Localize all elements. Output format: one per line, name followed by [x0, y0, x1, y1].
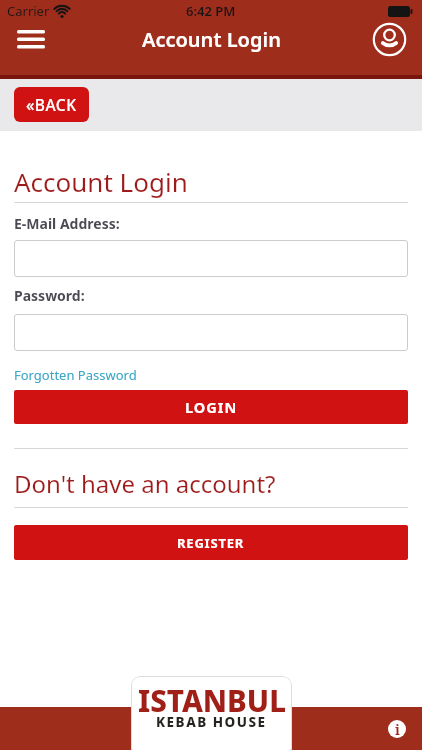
button[interactable]: REGISTER	[14, 525, 408, 560]
button[interactable]: Forgotten Password	[14, 366, 137, 384]
staticText: Password:	[14, 286, 85, 305]
staticText: ISTANBUL	[138, 680, 286, 720]
staticText: E-Mail Address:	[14, 214, 120, 233]
staticText: Don't have an account?	[14, 467, 276, 500]
button[interactable]: LOGIN	[14, 390, 408, 424]
staticText: Account Login	[14, 164, 188, 199]
button[interactable]	[14, 25, 48, 53]
staticText: Account Login	[142, 26, 281, 53]
button[interactable]: ISTANBUL	[131, 676, 292, 750]
staticText: KEBAB HOUSE	[156, 713, 267, 731]
button[interactable]	[372, 22, 406, 56]
staticText: 6:42 PM	[186, 2, 236, 20]
staticText: LOGIN	[185, 397, 238, 417]
staticText: REGISTER	[177, 534, 245, 552]
button[interactable]	[14, 240, 408, 277]
staticText: Carrier	[7, 2, 50, 20]
button[interactable]: «BACK	[14, 87, 89, 122]
staticText: i	[395, 720, 400, 738]
button[interactable]	[14, 314, 408, 351]
staticText: «BACK	[26, 94, 77, 115]
button[interactable]: i	[388, 720, 406, 738]
